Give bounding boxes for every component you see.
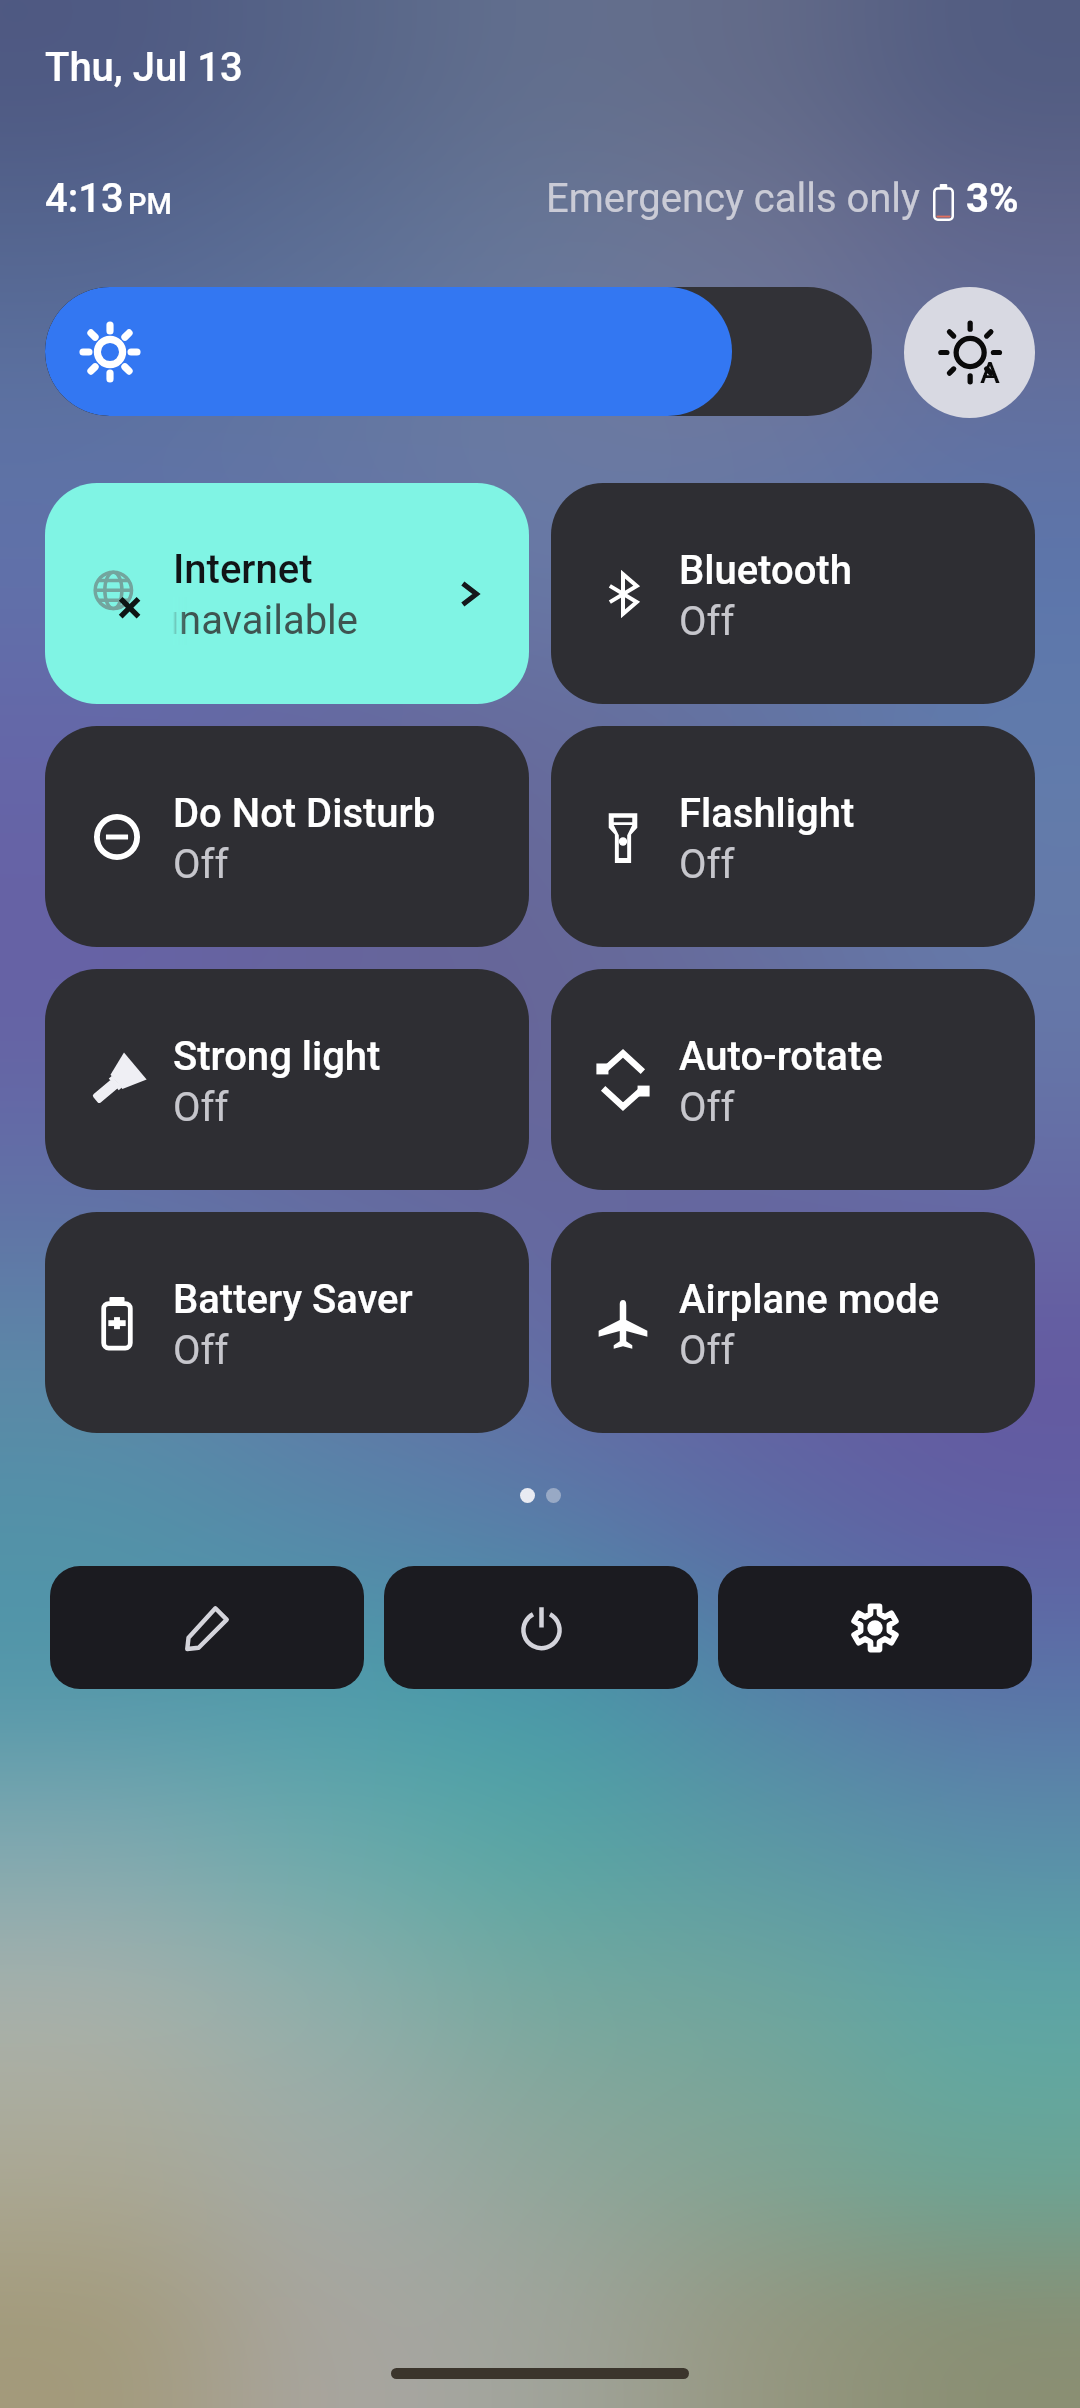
staticText: Off [679, 1327, 735, 1374]
staticText: Off [173, 1084, 229, 1131]
staticText: Battery Saver [173, 1276, 413, 1323]
staticText: PM [128, 187, 172, 221]
button[interactable]: Internet [45, 483, 529, 704]
button[interactable]: Power [384, 1566, 698, 1689]
button[interactable]: Bluetooth [551, 483, 1035, 704]
button[interactable]: Strong light [45, 969, 529, 1190]
staticText: Auto-rotate [679, 1033, 883, 1080]
staticText: Off [173, 841, 229, 888]
staticText: 3% [966, 175, 1019, 222]
staticText: Off [679, 841, 735, 888]
button[interactable]: Settings [718, 1566, 1032, 1689]
button[interactable]: Do Not Disturb [45, 726, 529, 947]
staticText: Off [679, 1084, 735, 1131]
staticText: Off [679, 598, 735, 645]
staticText: Do Not Disturb [173, 790, 436, 837]
staticText: Bluetooth [679, 547, 852, 594]
button[interactable]: Auto brightness [904, 287, 1035, 418]
button[interactable]: Brightness [45, 287, 872, 416]
staticText: Strong light [173, 1033, 381, 1080]
staticText: Thu, Jul 13 [45, 44, 243, 91]
staticText: Off [173, 1327, 229, 1374]
button[interactable]: Airplane mode [551, 1212, 1035, 1433]
button[interactable]: Edit [50, 1566, 364, 1689]
staticText: Airplane mode [679, 1276, 940, 1323]
staticText: Internet [173, 546, 313, 593]
staticText: 4:13 [45, 175, 124, 222]
staticText: A [980, 355, 1000, 390]
button[interactable]: Battery Saver [45, 1212, 529, 1433]
staticText: unavailable [173, 597, 359, 644]
staticText: Emergency calls only [546, 175, 921, 222]
button[interactable]: Auto-rotate [551, 969, 1035, 1190]
button[interactable]: Flashlight [551, 726, 1035, 947]
staticText: Flashlight [679, 790, 855, 837]
